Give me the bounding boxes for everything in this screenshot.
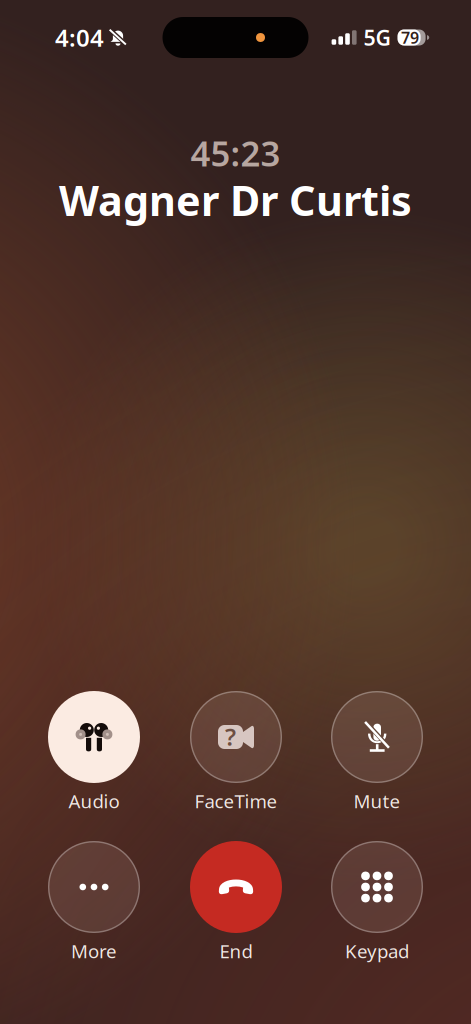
button[interactable]: Mute (306, 691, 448, 821)
staticText: 4:04 (55, 22, 104, 53)
staticText: Keypad (345, 939, 409, 963)
staticText: ? (225, 721, 236, 752)
staticText: 45:23 (190, 130, 280, 176)
staticText: More (71, 939, 117, 963)
staticText: End (219, 939, 252, 963)
button[interactable]: ? (165, 691, 307, 821)
staticText: FaceTime (194, 789, 277, 813)
staticText: Audio (68, 789, 119, 813)
staticText: 79 (401, 27, 419, 48)
button[interactable]: End (165, 841, 307, 971)
staticText: Wagner Dr Curtis (59, 173, 412, 227)
button[interactable]: More (23, 841, 165, 971)
staticText: Mute (353, 789, 400, 813)
button[interactable]: Audio (23, 691, 165, 821)
button[interactable]: Keypad (306, 841, 448, 971)
staticText: 5G (364, 23, 391, 52)
